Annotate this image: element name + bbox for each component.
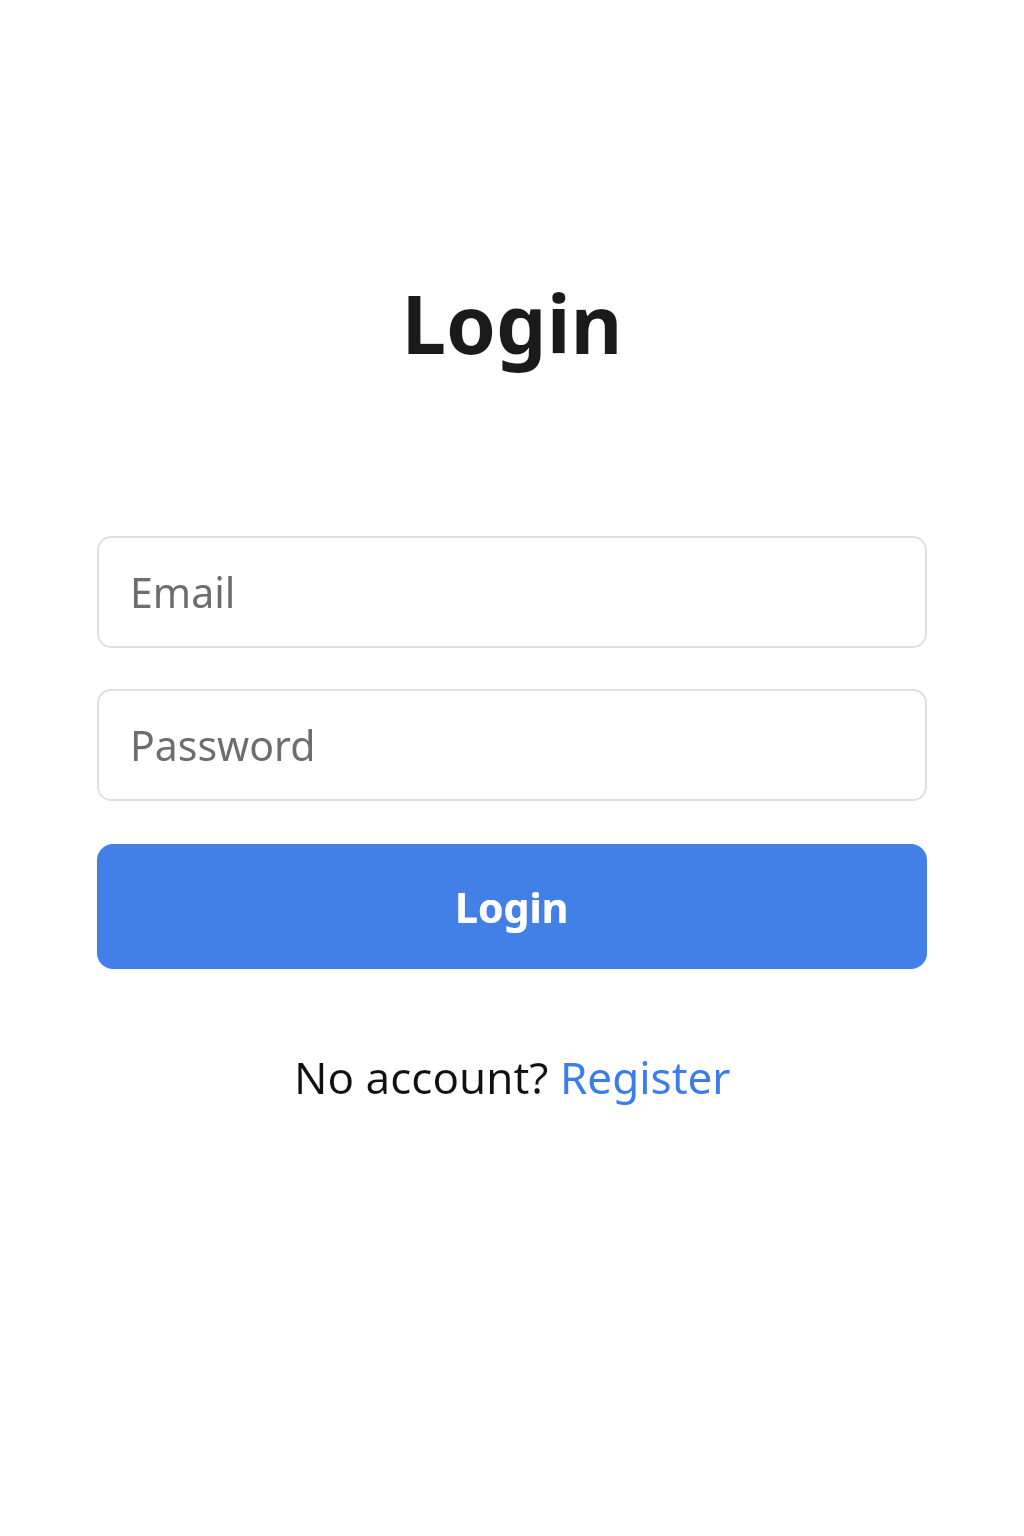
staticText: Login bbox=[455, 879, 569, 935]
staticText: Register bbox=[560, 1047, 731, 1107]
button[interactable]: Login bbox=[97, 844, 927, 969]
staticText: Email bbox=[130, 564, 236, 620]
button[interactable]: Email bbox=[97, 536, 927, 648]
button[interactable]: Register bbox=[560, 1047, 731, 1107]
staticText: Login bbox=[97, 268, 927, 377]
staticText: Password bbox=[130, 717, 316, 773]
staticText: No account? bbox=[294, 1047, 560, 1107]
button[interactable]: Password bbox=[97, 689, 927, 801]
